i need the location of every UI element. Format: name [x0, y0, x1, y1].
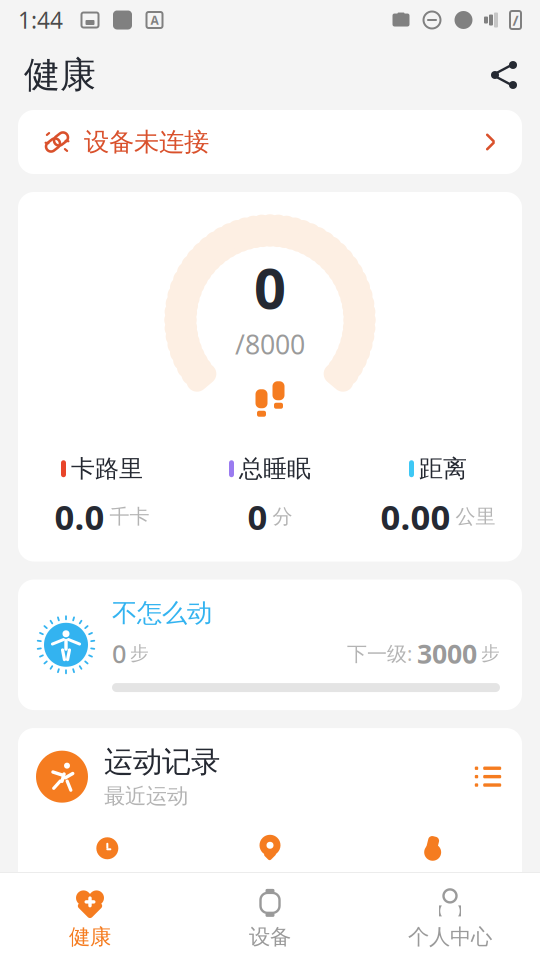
staticText: A	[150, 12, 158, 28]
staticText: 0	[254, 250, 286, 324]
staticText: 健康	[69, 924, 111, 950]
staticText: 距离	[419, 454, 467, 483]
staticText: /	[512, 10, 518, 30]
staticText: 时长	[83, 871, 131, 901]
staticText: 设备未连接	[84, 126, 209, 157]
staticText: 最近运动	[104, 783, 188, 809]
staticText: 公里	[455, 504, 495, 529]
staticText: 0	[247, 493, 267, 539]
staticText: 千卡	[109, 504, 149, 529]
staticText: 健康	[24, 53, 96, 97]
button[interactable]: 个人中心	[360, 879, 540, 960]
button[interactable]: 分享	[482, 53, 526, 97]
staticText: 距离	[246, 871, 294, 901]
staticText: 不怎么动	[112, 597, 212, 629]
staticText: 1:44	[18, 5, 63, 35]
button[interactable]: 运动记录	[18, 728, 522, 809]
staticText: 3000	[417, 636, 477, 671]
staticText: 0.0	[54, 493, 104, 539]
staticText: 卡路里	[397, 871, 469, 901]
staticText: 设备	[249, 924, 291, 950]
staticText: 运动记录	[104, 744, 220, 780]
staticText: 下一级:	[347, 640, 412, 667]
staticText: 步	[130, 642, 149, 665]
button[interactable]: 0	[18, 192, 522, 561]
button[interactable]: 不怎么动	[18, 579, 522, 710]
staticText: 步	[481, 642, 500, 665]
staticText: 0	[112, 636, 126, 670]
staticText: 总睡眠	[239, 454, 311, 483]
button[interactable]: 健康	[0, 879, 180, 960]
staticText: 卡路里	[71, 454, 143, 483]
button[interactable]: 设备	[180, 879, 360, 960]
staticText: 个人中心	[408, 924, 492, 950]
button[interactable]: 设备未连接	[18, 110, 522, 174]
staticText: 0.00	[380, 493, 450, 539]
staticText: /8000	[235, 326, 305, 362]
staticText: 分	[272, 504, 292, 529]
